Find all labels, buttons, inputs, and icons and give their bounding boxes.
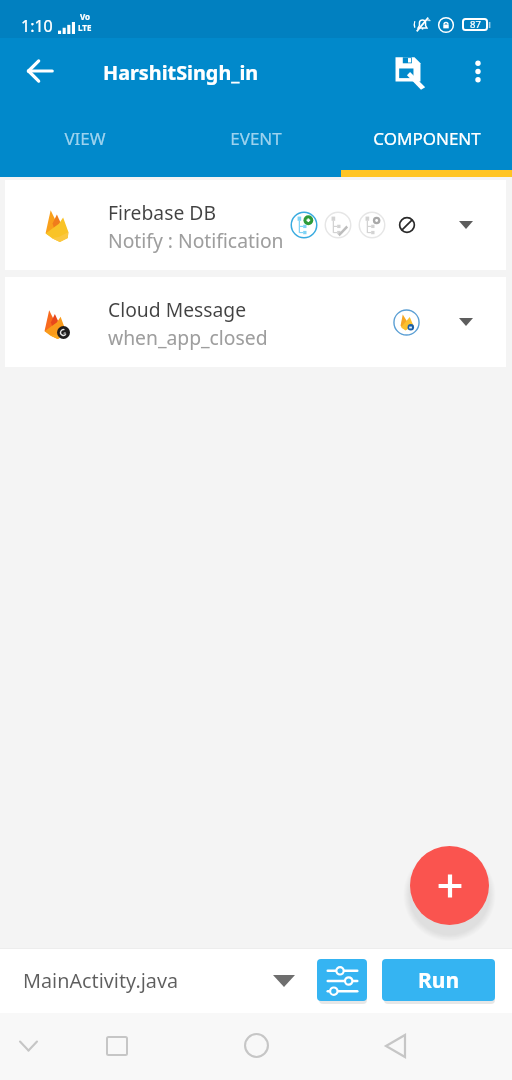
staticText: COMPONENT	[373, 127, 481, 150]
button[interactable]: More options	[454, 47, 502, 95]
button[interactable]: Back	[16, 47, 64, 95]
staticText: HarshitSingh_in	[103, 59, 259, 86]
button[interactable]: Expand	[452, 308, 480, 336]
button[interactable]: Save	[386, 48, 434, 96]
button[interactable]: VIEW	[0, 112, 170, 177]
staticText: Firebase DB	[108, 199, 216, 225]
button[interactable]: Edit event	[324, 211, 352, 239]
staticText: Vo	[80, 11, 91, 22]
button[interactable]: Recent apps	[94, 1023, 139, 1068]
staticText: when_app_closed	[108, 324, 268, 350]
button[interactable]: Home	[234, 1023, 279, 1068]
button[interactable]: Add component	[410, 846, 489, 925]
button[interactable]: Firebase cloud messaging	[392, 308, 420, 336]
button[interactable]: Firebase DB	[5, 180, 506, 270]
staticText: 1:10	[21, 15, 53, 37]
staticText: Run	[418, 966, 460, 995]
staticText: LTE	[78, 22, 92, 33]
staticText: Notify : Notification	[108, 227, 284, 253]
button[interactable]: Project settings	[317, 959, 367, 1001]
button[interactable]: Back	[373, 1023, 418, 1068]
staticText: EVENT	[230, 127, 282, 150]
button[interactable]: Hide keyboard	[6, 1023, 51, 1068]
staticText: VIEW	[64, 127, 106, 150]
button[interactable]: Run	[382, 959, 495, 1001]
button[interactable]: MainActivity.java	[23, 948, 295, 1013]
button[interactable]: Add event	[290, 211, 318, 239]
button[interactable]: Cloud Message	[5, 277, 506, 367]
staticText: Cloud Message	[108, 296, 247, 322]
staticText: 87	[470, 18, 481, 31]
button[interactable]: COMPONENT	[341, 112, 512, 177]
button[interactable]: Disable	[393, 211, 421, 239]
button[interactable]: Expand	[452, 211, 480, 239]
button[interactable]: Event settings	[358, 211, 386, 239]
staticText: MainActivity.java	[23, 967, 179, 994]
button[interactable]: EVENT	[170, 112, 341, 177]
